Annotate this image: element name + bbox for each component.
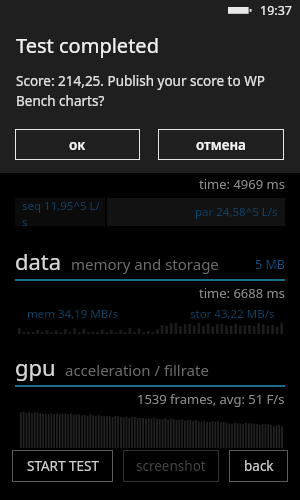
staticText: data [15, 246, 62, 276]
button[interactable]: ок [15, 129, 140, 160]
button[interactable]: START TEST [12, 450, 113, 482]
staticText: gpu [15, 352, 56, 382]
staticText: Test completed [16, 32, 159, 59]
staticText: 5 MB [255, 256, 285, 273]
button[interactable]: screenshot [123, 450, 219, 482]
staticText: screenshot [136, 457, 206, 475]
button[interactable]: отмена [158, 129, 284, 160]
staticText: time: 4969 ms [199, 175, 285, 193]
other: Battery [228, 5, 252, 16]
staticText: back [244, 457, 274, 475]
staticText: time: 6688 ms [199, 284, 285, 302]
staticText: Score: 214,25. Publish your score to WP … [16, 72, 286, 110]
staticText: stor 43,22 MB/s [190, 306, 275, 322]
staticText: 19:37 [260, 2, 292, 19]
staticText: par 24,58^5 L/s [195, 204, 278, 220]
staticText: ок [69, 136, 86, 154]
staticText: 1539 frames, avg: 51 F/s [137, 390, 285, 408]
staticText: memory and storage [71, 254, 219, 274]
staticText: seq 11,95^5 L/s [22, 198, 105, 226]
staticText: mem 34,19 MB/s [27, 306, 119, 322]
staticText: acceleration / fillrate [65, 360, 209, 380]
staticText: START TEST [27, 457, 99, 475]
button[interactable]: back [229, 450, 288, 482]
staticText: отмена [196, 136, 246, 154]
